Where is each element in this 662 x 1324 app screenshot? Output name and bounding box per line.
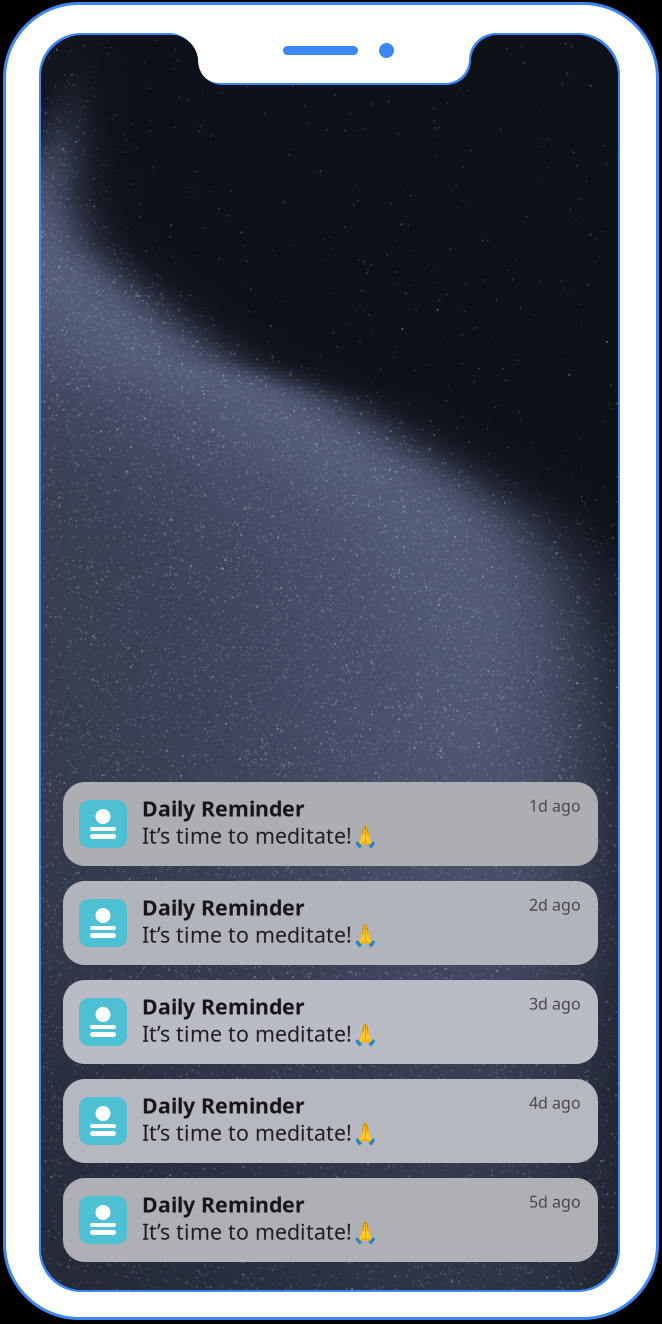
- staticText: It’s time to meditate!🙏: [142, 1019, 379, 1048]
- staticText: It’s time to meditate!🙏: [142, 1217, 379, 1246]
- staticText: 2d ago: [529, 894, 581, 915]
- staticText: It’s time to meditate!🙏: [142, 920, 379, 949]
- staticText: 3d ago: [529, 993, 581, 1014]
- staticText: Daily Reminder: [142, 1091, 305, 1119]
- staticText: Daily Reminder: [142, 1190, 305, 1218]
- staticText: Daily Reminder: [142, 992, 305, 1020]
- staticText: It’s time to meditate!🙏: [142, 1118, 379, 1147]
- staticText: 4d ago: [529, 1092, 581, 1113]
- button[interactable]: Daily Reminder: [63, 881, 598, 965]
- button[interactable]: Daily Reminder: [63, 782, 598, 866]
- staticText: It’s time to meditate!🙏: [142, 821, 379, 850]
- staticText: Daily Reminder: [142, 893, 305, 921]
- button[interactable]: Daily Reminder: [63, 980, 598, 1064]
- staticText: 5d ago: [529, 1191, 581, 1212]
- staticText: 1d ago: [529, 795, 581, 816]
- button[interactable]: Daily Reminder: [63, 1079, 598, 1163]
- staticText: Daily Reminder: [142, 794, 305, 822]
- button[interactable]: Daily Reminder: [63, 1178, 598, 1262]
